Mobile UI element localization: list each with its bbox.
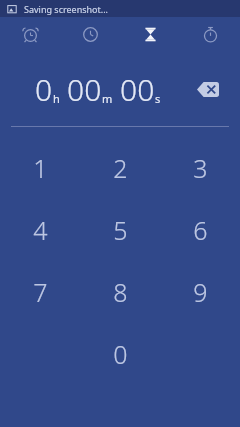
button[interactable]: 2 [80, 137, 160, 199]
button[interactable]: 1 [0, 137, 80, 199]
staticText: 6 [193, 213, 208, 247]
button[interactable]: 3 [160, 137, 240, 199]
staticText: 3 [193, 151, 208, 185]
staticText: 5 [113, 213, 128, 247]
button[interactable]: Clock [60, 17, 120, 52]
staticText: 2 [113, 151, 128, 185]
button[interactable]: 7 [0, 261, 80, 323]
button[interactable]: 9 [160, 261, 240, 323]
button[interactable]: Alarm [0, 17, 60, 52]
staticText: 4 [33, 213, 48, 247]
button[interactable]: 4 [0, 199, 80, 261]
staticText: s [155, 91, 161, 106]
staticText: 00 [67, 69, 102, 110]
staticText: 00 [120, 69, 155, 110]
staticText: Saving screenshot... [24, 3, 109, 15]
staticText: m [102, 91, 113, 106]
button[interactable]: 0 [80, 323, 160, 385]
staticText: 1 [33, 151, 48, 185]
button[interactable]: Timer [120, 17, 180, 52]
button[interactable]: Stopwatch [180, 17, 240, 52]
button[interactable]: 5 [80, 199, 160, 261]
staticText: 7 [33, 275, 48, 309]
button[interactable]: 6 [160, 199, 240, 261]
button[interactable]: 8 [80, 261, 160, 323]
staticText: h [53, 91, 60, 106]
staticText: 9 [193, 275, 208, 309]
staticText: 8 [113, 275, 128, 309]
staticText: 0 [113, 337, 128, 371]
staticText: 0 [35, 69, 53, 110]
button[interactable]: Backspace [190, 71, 226, 107]
